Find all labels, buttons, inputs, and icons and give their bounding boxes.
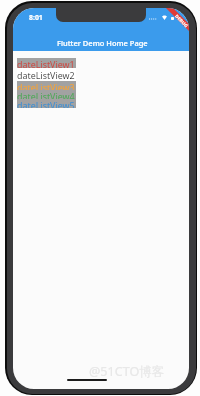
staticText: dateListView4	[17, 90, 75, 99]
staticText: dateListView5	[17, 99, 75, 108]
other: Debug banner	[160, 8, 189, 42]
staticText: dateListView1	[17, 58, 75, 68]
button[interactable]: dateListView3	[17, 81, 76, 90]
staticText: dateListView3	[17, 81, 75, 90]
staticText: DEBUG	[175, 13, 189, 28]
button[interactable]: dateListView1	[17, 58, 76, 68]
staticText: Flutter Demo Home Page	[57, 38, 148, 48]
staticText: 8:01	[29, 13, 43, 22]
button[interactable]: dateListView5	[17, 99, 76, 108]
staticText: dateListView2	[17, 69, 75, 81]
button[interactable]: dateListView4	[17, 90, 76, 99]
staticText: @51CTO博客	[89, 363, 165, 380]
button[interactable]: dateListView2	[17, 68, 76, 81]
